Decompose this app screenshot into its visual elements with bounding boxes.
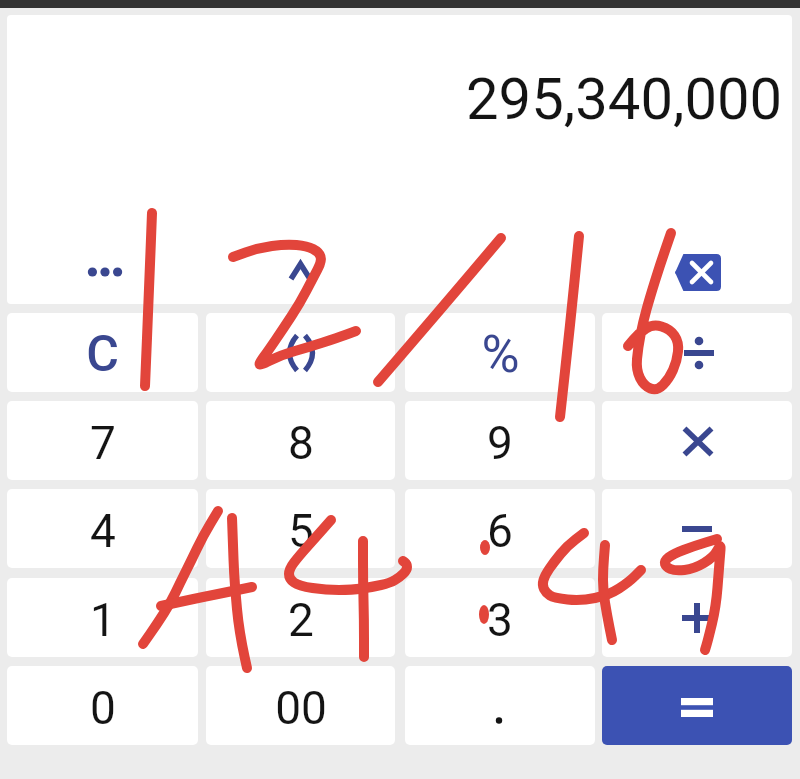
staticText: 4 — [90, 504, 116, 558]
button[interactable]: Backspace — [602, 242, 792, 302]
button[interactable]: Parentheses — [206, 313, 395, 392]
staticText: % — [481, 324, 520, 385]
staticText: 1 — [90, 593, 116, 647]
button[interactable]: More options — [7, 242, 198, 302]
button[interactable]: Power — [206, 242, 395, 302]
button[interactable]: 6 — [405, 489, 595, 568]
button[interactable]: 0 — [7, 666, 198, 745]
button[interactable]: 3 — [405, 578, 595, 657]
staticText: 3 — [487, 593, 513, 647]
button[interactable]: 1 — [7, 578, 198, 657]
staticText: 295,340,000 — [466, 65, 783, 133]
button[interactable]: % — [405, 313, 595, 392]
button[interactable]: 7 — [7, 401, 198, 480]
staticText: 5 — [288, 504, 314, 558]
button[interactable]: Divide — [602, 313, 792, 392]
button[interactable]: 9 — [405, 401, 595, 480]
button[interactable]: C — [7, 313, 198, 392]
staticText: C — [86, 325, 119, 384]
button[interactable]: Multiply — [602, 401, 792, 480]
button[interactable]: 4 — [7, 489, 198, 568]
button[interactable]: 8 — [206, 401, 395, 480]
staticText: 00 — [275, 681, 327, 735]
button[interactable]: Minus — [602, 489, 792, 568]
button[interactable]: 2 — [206, 578, 395, 657]
button[interactable]: Plus — [602, 578, 792, 657]
staticText: 9 — [487, 416, 513, 470]
button[interactable]: 5 — [206, 489, 395, 568]
button[interactable] — [405, 242, 595, 302]
button[interactable]: 00 — [206, 666, 395, 745]
staticText: 2 — [288, 593, 314, 647]
button[interactable]: Equals — [602, 666, 792, 745]
button[interactable]: Decimal point — [405, 666, 595, 745]
staticText: 6 — [487, 504, 513, 558]
staticText: 8 — [288, 416, 314, 470]
staticText: 7 — [90, 416, 116, 470]
staticText: 0 — [90, 681, 116, 735]
